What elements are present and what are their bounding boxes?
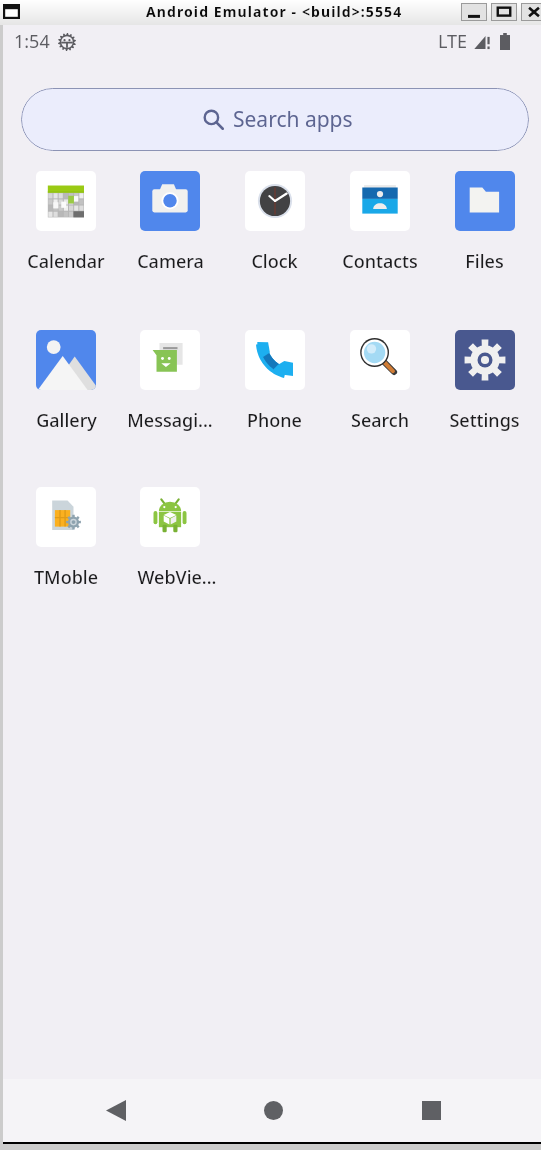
button[interactable]: Files: [432, 171, 537, 274]
staticText: Contacts: [342, 249, 418, 274]
staticText: Clock: [251, 249, 298, 274]
button[interactable]: Messagi...: [118, 330, 222, 433]
staticText: Search: [351, 408, 409, 433]
button[interactable]: Settings: [432, 330, 537, 433]
staticText: WebVie...: [137, 565, 217, 590]
button[interactable]: Home: [194, 1079, 352, 1142]
button[interactable]: Maximize: [491, 3, 517, 21]
staticText: Files: [465, 249, 504, 274]
staticText: Calendar: [27, 249, 105, 274]
button[interactable]: Clock: [222, 171, 327, 274]
staticText: Android Emulator - <build>:5554: [146, 2, 403, 21]
staticText: Camera: [137, 249, 204, 274]
button[interactable]: WebVie...: [118, 487, 222, 590]
staticText: TMoble: [34, 565, 98, 590]
button[interactable]: Search: [327, 330, 432, 433]
button[interactable]: Gallery: [14, 330, 118, 433]
button[interactable]: Camera: [118, 171, 222, 274]
staticText: Settings: [449, 408, 520, 433]
staticText: Gallery: [36, 408, 97, 433]
staticText: Phone: [247, 408, 302, 433]
staticText: LTE: [438, 29, 468, 54]
button[interactable]: Calendar: [14, 171, 118, 274]
button[interactable]: Recents: [352, 1079, 510, 1142]
button[interactable]: Close: [521, 3, 541, 21]
button[interactable]: Minimize: [461, 3, 487, 21]
button[interactable]: Contacts: [327, 171, 432, 274]
button[interactable]: Phone: [222, 330, 327, 433]
staticText: Search apps: [233, 105, 353, 134]
button[interactable]: Search apps: [21, 88, 529, 151]
button[interactable]: TMoble: [14, 487, 118, 590]
button[interactable]: Back: [37, 1079, 194, 1142]
staticText: Messagi...: [127, 408, 213, 433]
staticText: 1:54: [14, 29, 50, 54]
